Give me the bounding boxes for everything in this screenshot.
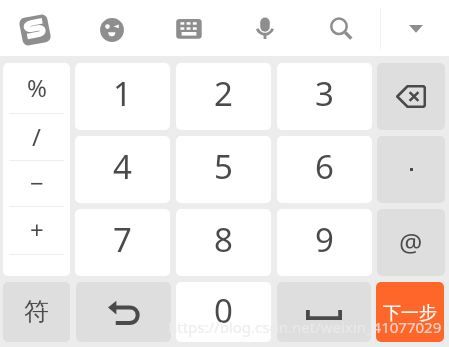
staticText: 1 <box>113 71 132 116</box>
button[interactable]: 3 <box>277 63 372 130</box>
staticText: 8 <box>214 217 233 262</box>
button[interactable]: 8 <box>176 209 271 276</box>
staticText: / <box>32 120 41 153</box>
button[interactable]: 5 <box>176 136 271 203</box>
button[interactable]: 0 <box>176 282 271 342</box>
staticText: 6 <box>315 144 334 189</box>
staticText: 符 <box>24 296 49 327</box>
button[interactable]: Search <box>316 6 362 52</box>
button[interactable]: Space <box>277 282 371 342</box>
staticText: https://blog.csdn.net/weixin_41077029 <box>168 317 442 337</box>
button[interactable]: / <box>3 114 70 160</box>
staticText: 0 <box>214 288 233 333</box>
button[interactable]: 9 <box>277 209 372 276</box>
button[interactable]: Voice input <box>242 6 288 52</box>
button[interactable]: 4 <box>75 136 170 203</box>
button[interactable]: Keyboard layout <box>166 6 212 52</box>
staticText: https://blog.csdn.net/weixin_41077029 <box>168 317 442 337</box>
staticText: + <box>30 213 44 246</box>
button[interactable]: 6 <box>277 136 372 203</box>
staticText: 5 <box>214 144 233 189</box>
staticText: 3 <box>315 71 334 116</box>
button[interactable]: @ <box>377 209 445 276</box>
staticText: % <box>27 71 47 104</box>
button[interactable]: 1 <box>75 63 170 130</box>
button[interactable]: % <box>3 63 70 113</box>
button[interactable]: 7 <box>75 209 170 276</box>
button[interactable]: − <box>3 161 70 206</box>
button[interactable]: + <box>3 207 70 254</box>
staticText: @ <box>399 224 423 259</box>
staticText: 4 <box>113 144 132 189</box>
button[interactable]: Hide keyboard <box>393 6 439 52</box>
staticText: 9 <box>315 217 334 262</box>
button[interactable]: 2 <box>176 63 271 130</box>
button[interactable]: Symbols <box>3 282 70 342</box>
staticText: 7 <box>113 217 132 262</box>
staticText: 下一步 <box>383 302 437 325</box>
button[interactable]: Period <box>377 136 445 203</box>
button[interactable]: Emoji <box>89 7 135 53</box>
staticText: − <box>30 166 44 199</box>
button[interactable]: Delete <box>377 63 445 130</box>
button[interactable]: Sogou input method <box>12 7 58 53</box>
button[interactable]: Return <box>76 282 171 342</box>
staticText: 2 <box>214 71 233 116</box>
button[interactable]: 下一步 <box>376 282 444 342</box>
